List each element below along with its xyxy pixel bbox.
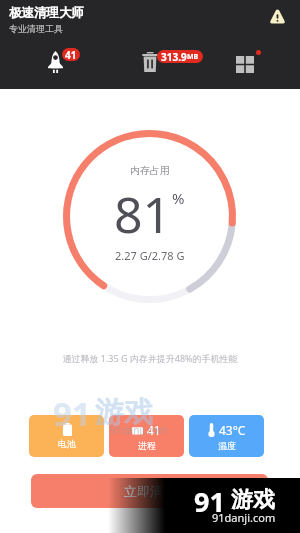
button[interactable]: More tools — [228, 44, 268, 80]
staticText: 立即清理 — [124, 483, 176, 499]
staticText: % — [172, 188, 185, 208]
staticText: 41 — [147, 422, 161, 438]
button[interactable]: Warning — [267, 6, 287, 26]
button[interactable]: Clean junk — [130, 44, 200, 80]
staticText: 91 — [53, 391, 91, 436]
staticText: MB — [187, 52, 199, 62]
staticText: 游戏 — [231, 486, 275, 514]
staticText: 43°C — [219, 422, 246, 438]
button[interactable]: 41 — [109, 415, 184, 457]
staticText: 内存占用 — [130, 164, 170, 177]
staticText: 进程 — [138, 440, 156, 451]
button[interactable]: 电池 — [29, 415, 104, 457]
staticText: 2.27 G/2.78 G — [115, 248, 185, 263]
button[interactable]: 43°C — [189, 415, 264, 457]
staticText: 41 — [65, 48, 77, 61]
staticText: 91danji.com — [212, 510, 276, 525]
button[interactable]: Boost — [28, 44, 90, 80]
staticText: 极速清理大师 — [9, 5, 84, 21]
staticText: 91 — [194, 483, 225, 520]
staticText: 专业清理工具 — [9, 23, 63, 34]
staticText: 游戏 — [95, 394, 153, 431]
staticText: 电池 — [58, 438, 76, 449]
staticText: 温度 — [218, 440, 236, 451]
staticText: 81 — [114, 180, 172, 248]
staticText: 通过释放 1.35 G 内存并提升48%的手机性能 — [62, 352, 238, 364]
button[interactable]: 立即清理 — [31, 474, 268, 508]
staticText: 313.9 — [161, 50, 187, 63]
staticText: 91danji.com — [110, 423, 168, 437]
